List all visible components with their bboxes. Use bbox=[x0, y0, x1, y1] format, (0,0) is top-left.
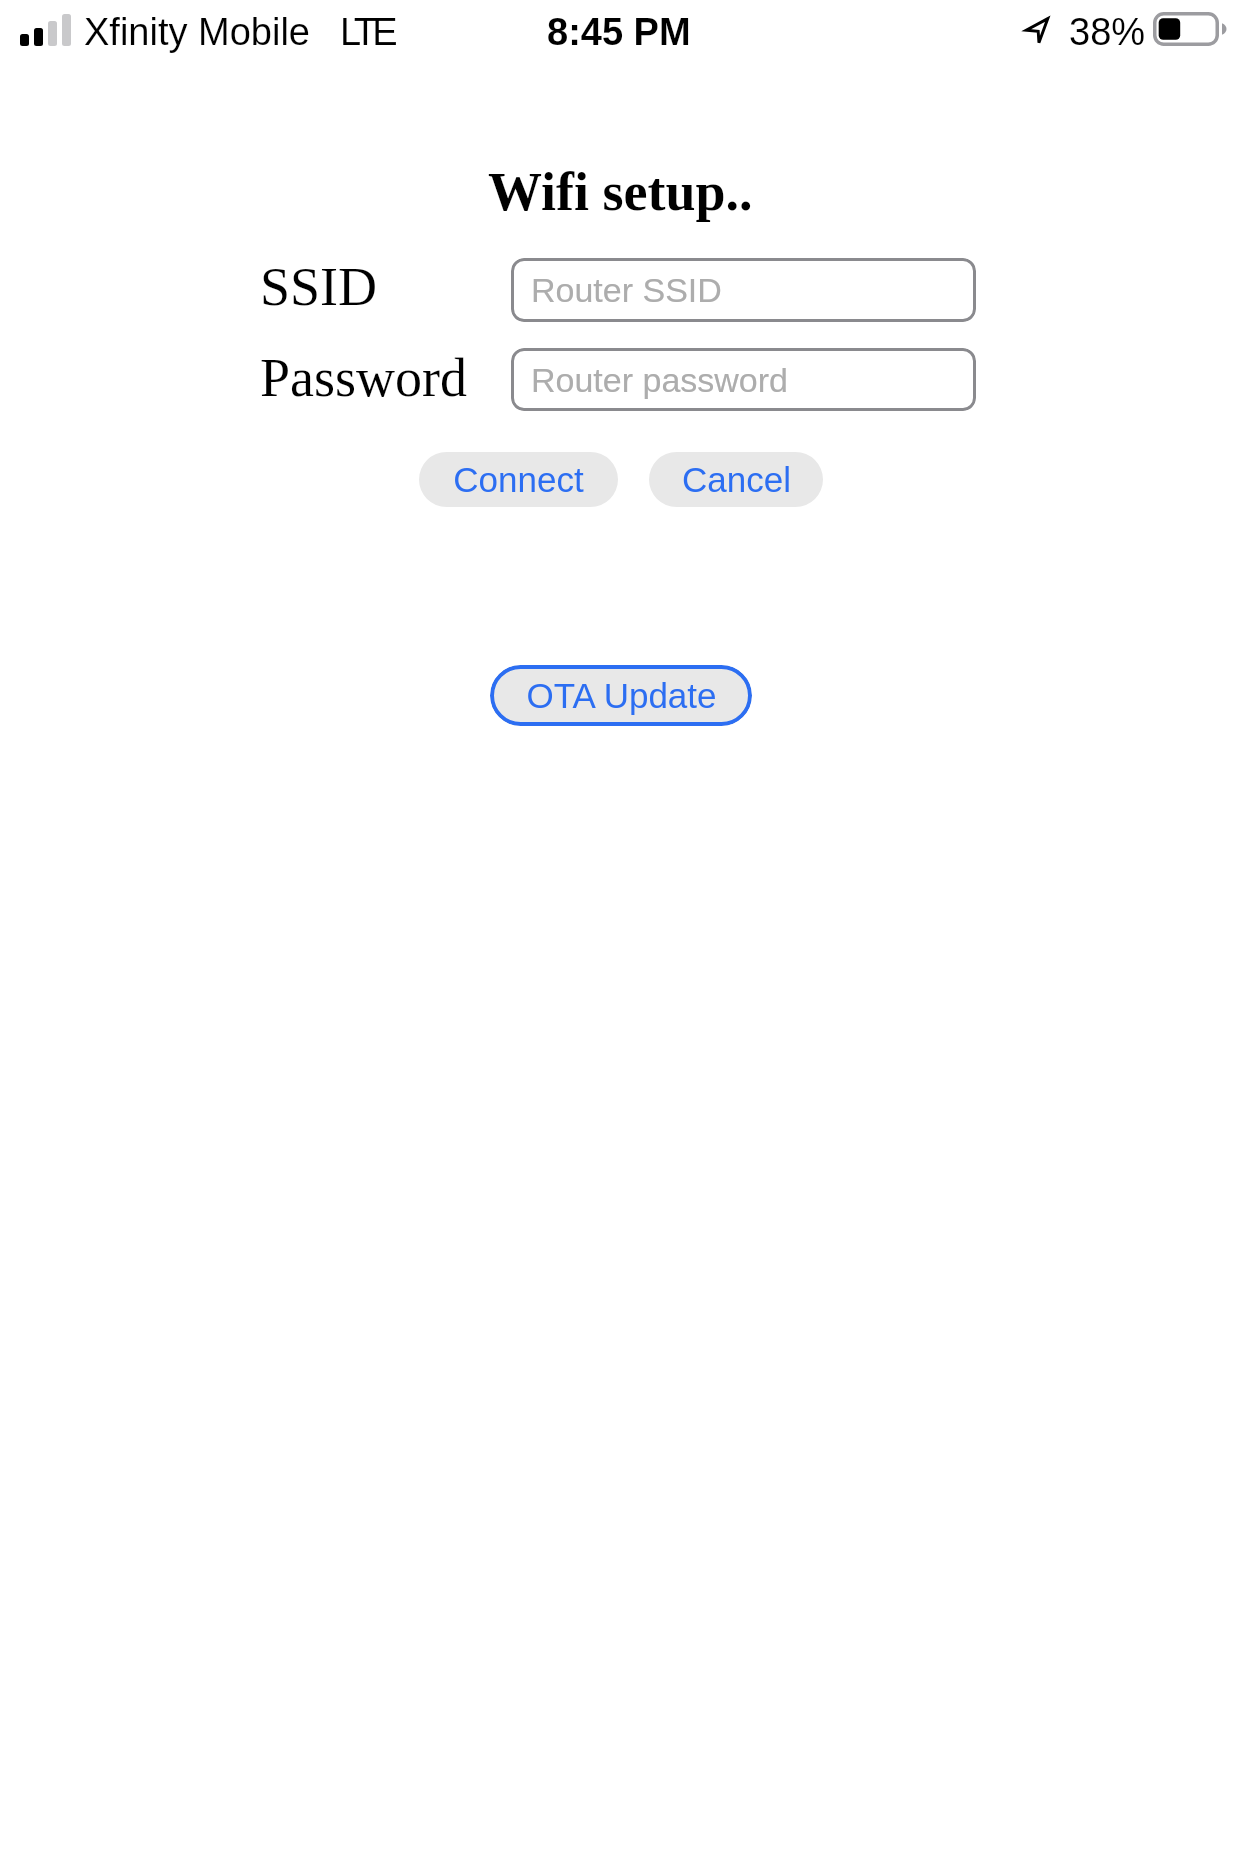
staticText: Xfinity Mobile bbox=[84, 11, 310, 53]
staticText: Connect bbox=[453, 460, 584, 499]
staticText: 38% bbox=[1069, 11, 1146, 53]
staticText: 8:45 PM bbox=[547, 11, 691, 53]
button[interactable]: Router password bbox=[511, 348, 976, 411]
other: Location bbox=[1025, 17, 1049, 44]
button[interactable]: OTA Update bbox=[490, 665, 752, 726]
staticText: Router password bbox=[531, 361, 789, 399]
staticText: LTE bbox=[340, 11, 394, 53]
staticText: Cancel bbox=[682, 460, 791, 499]
button[interactable]: Cancel bbox=[649, 452, 823, 507]
staticText: SSID bbox=[260, 257, 378, 317]
staticText: Router SSID bbox=[531, 271, 722, 309]
button[interactable]: Router SSID bbox=[511, 258, 976, 322]
staticText: Password bbox=[260, 348, 468, 408]
button[interactable]: Connect bbox=[419, 452, 618, 507]
other: Battery 38 percent bbox=[1153, 12, 1227, 46]
staticText: OTA Update bbox=[526, 676, 717, 715]
staticText: Wifi setup.. bbox=[488, 162, 753, 222]
